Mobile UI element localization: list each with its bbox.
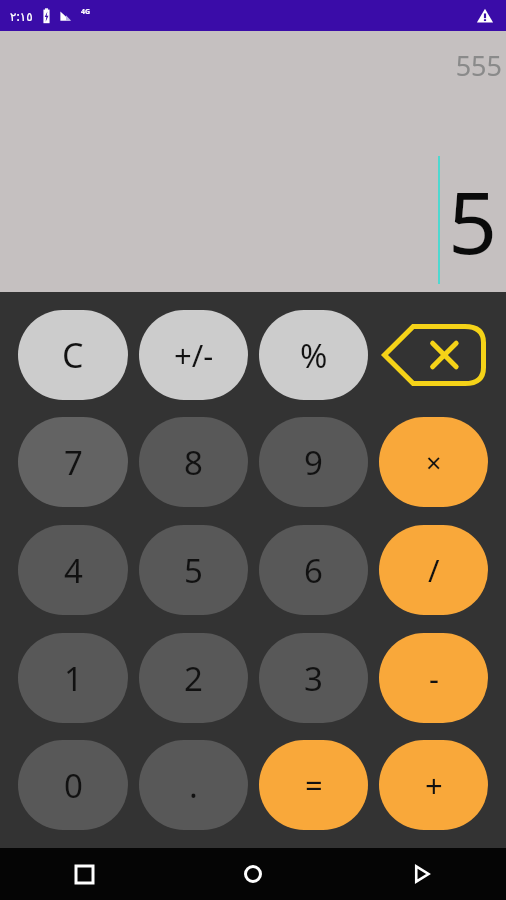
staticText: 4G: [81, 7, 91, 17]
button[interactable]: 4: [18, 525, 128, 615]
staticText: %: [300, 333, 328, 378]
staticText: 5: [184, 548, 203, 593]
staticText: 555: [455, 47, 502, 84]
button[interactable]: =: [259, 740, 368, 830]
button[interactable]: 2: [139, 633, 248, 723]
button[interactable]: C: [18, 310, 128, 400]
staticText: -: [429, 657, 439, 699]
button[interactable]: .: [139, 740, 248, 830]
button[interactable]: Recents: [0, 848, 168, 900]
staticText: ×: [426, 444, 442, 481]
staticText: 7: [64, 440, 83, 485]
staticText: 1: [64, 656, 83, 701]
button[interactable]: -: [379, 633, 488, 723]
button[interactable]: %: [259, 310, 368, 400]
staticText: +: [425, 764, 443, 806]
staticText: 3: [304, 656, 323, 701]
staticText: 9: [304, 440, 323, 485]
staticText: 6: [304, 548, 323, 593]
button[interactable]: +/-: [139, 310, 248, 400]
button[interactable]: 1: [18, 633, 128, 723]
button[interactable]: 6: [259, 525, 368, 615]
staticText: C: [62, 332, 84, 378]
staticText: =: [305, 764, 323, 806]
button[interactable]: 0: [18, 740, 128, 830]
button[interactable]: +: [379, 740, 488, 830]
staticText: 0: [64, 763, 83, 808]
button[interactable]: 3: [259, 633, 368, 723]
button[interactable]: Backspace: [379, 310, 488, 400]
button[interactable]: Home: [168, 848, 337, 900]
staticText: 8: [184, 440, 203, 485]
button[interactable]: ×: [379, 417, 488, 507]
button[interactable]: 8: [139, 417, 248, 507]
staticText: 5: [448, 162, 498, 279]
staticText: 4: [64, 548, 83, 593]
staticText: ٢:١٥: [10, 8, 33, 24]
button[interactable]: 7: [18, 417, 128, 507]
staticText: /: [428, 549, 440, 591]
button[interactable]: Back: [337, 848, 506, 900]
button[interactable]: /: [379, 525, 488, 615]
button[interactable]: 9: [259, 417, 368, 507]
staticText: +/-: [174, 334, 214, 376]
button[interactable]: 5: [139, 525, 248, 615]
staticText: 2: [184, 656, 203, 701]
staticText: .: [189, 763, 198, 808]
